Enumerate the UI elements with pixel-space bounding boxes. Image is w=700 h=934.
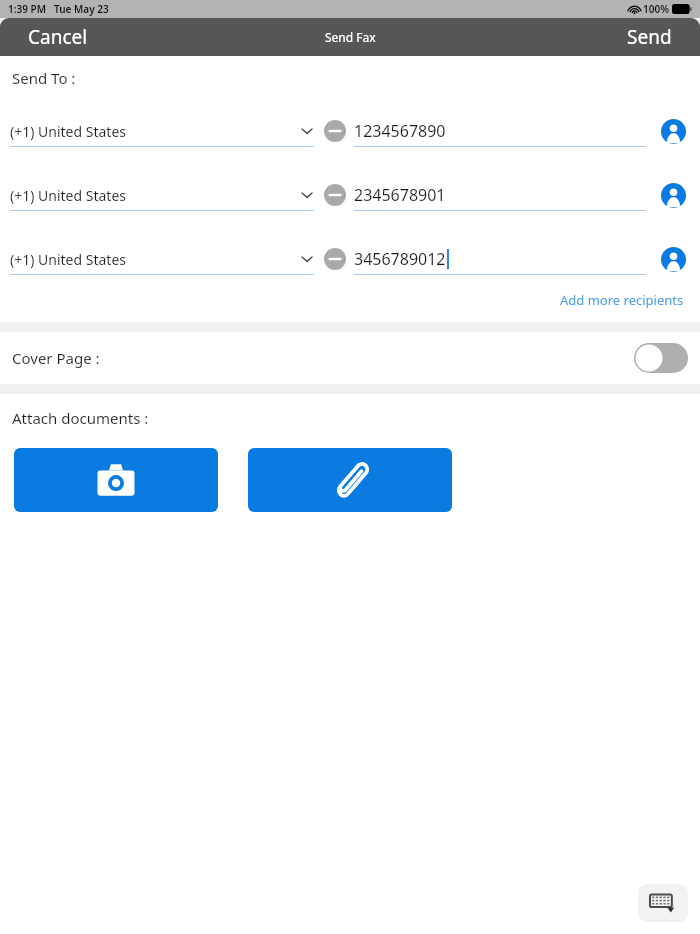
staticText: (+1) United States — [10, 250, 127, 269]
button[interactable]: Remove recipient — [322, 246, 348, 272]
staticText: 1:39 PM — [8, 2, 46, 16]
staticText: Send Fax — [325, 29, 376, 45]
staticText: Tue May 23 — [54, 2, 109, 16]
button[interactable]: Choose contact — [658, 180, 688, 210]
staticText: Cover Page : — [12, 348, 100, 368]
button[interactable]: Hide keyboard — [638, 884, 688, 922]
staticText: Send — [627, 24, 672, 50]
staticText: 100% — [643, 2, 669, 16]
button[interactable]: 2345678901 — [354, 180, 646, 211]
button[interactable]: Remove recipient — [322, 182, 348, 208]
button[interactable]: Remove recipient — [322, 118, 348, 144]
button[interactable]: Choose contact — [658, 244, 688, 274]
button[interactable]: (+1) United States — [10, 116, 314, 147]
staticText: 1234567890 — [354, 120, 446, 142]
button[interactable]: 3456789012 — [354, 244, 646, 275]
staticText: Add more recipients — [560, 291, 684, 309]
staticText: Cancel — [28, 24, 88, 50]
button[interactable]: Add more recipients — [556, 288, 688, 312]
staticText: (+1) United States — [10, 186, 127, 205]
staticText: 3456789012 — [354, 248, 446, 270]
button[interactable]: (+1) United States — [10, 244, 314, 275]
button[interactable]: Cancel — [22, 20, 94, 54]
button[interactable]: Attach file — [248, 448, 452, 512]
staticText: Attach documents : — [12, 408, 149, 428]
button[interactable]: (+1) United States — [10, 180, 314, 211]
button[interactable]: Send — [621, 20, 678, 54]
button[interactable]: 1234567890 — [354, 116, 646, 147]
staticText: 2345678901 — [354, 184, 446, 206]
button[interactable]: Choose contact — [658, 116, 688, 146]
staticText: (+1) United States — [10, 122, 127, 141]
staticText: Send To : — [12, 68, 76, 88]
button[interactable]: Cover page toggle — [634, 343, 688, 373]
button[interactable]: Take photo — [14, 448, 218, 512]
